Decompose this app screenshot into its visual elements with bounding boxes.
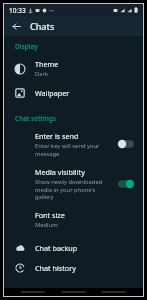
staticText: Show newly downloaded media in your phon… xyxy=(35,178,111,200)
staticText: Dark xyxy=(35,70,48,78)
staticText: Display xyxy=(15,42,38,51)
staticText: Chats xyxy=(30,20,55,32)
staticText: Theme xyxy=(35,59,59,69)
button[interactable]: Font size xyxy=(4,205,143,234)
staticText: Font size xyxy=(35,210,65,220)
button[interactable]: Media visibility xyxy=(4,162,143,205)
button[interactable]: Theme xyxy=(4,54,143,83)
staticText: Chat settings xyxy=(15,114,56,123)
button[interactable]: Wallpaper xyxy=(4,83,143,103)
staticText: 10:33 xyxy=(9,6,26,15)
staticText: Chat backup xyxy=(35,243,78,253)
staticText: Media visibility xyxy=(35,167,85,177)
staticText: Chat history xyxy=(35,263,76,273)
staticText: Enter is send xyxy=(35,131,79,141)
button[interactable]: Back xyxy=(8,18,24,34)
staticText: Wallpaper xyxy=(35,88,70,98)
button[interactable]: Toggle off xyxy=(117,138,135,150)
button[interactable]: Chat backup xyxy=(4,238,143,258)
button[interactable]: Chat history xyxy=(4,258,143,278)
staticText: Medium xyxy=(35,221,58,229)
button[interactable]: Toggle on xyxy=(117,178,135,190)
button[interactable]: Enter is send xyxy=(4,126,143,162)
staticText: Enter key will send your message xyxy=(35,142,111,157)
